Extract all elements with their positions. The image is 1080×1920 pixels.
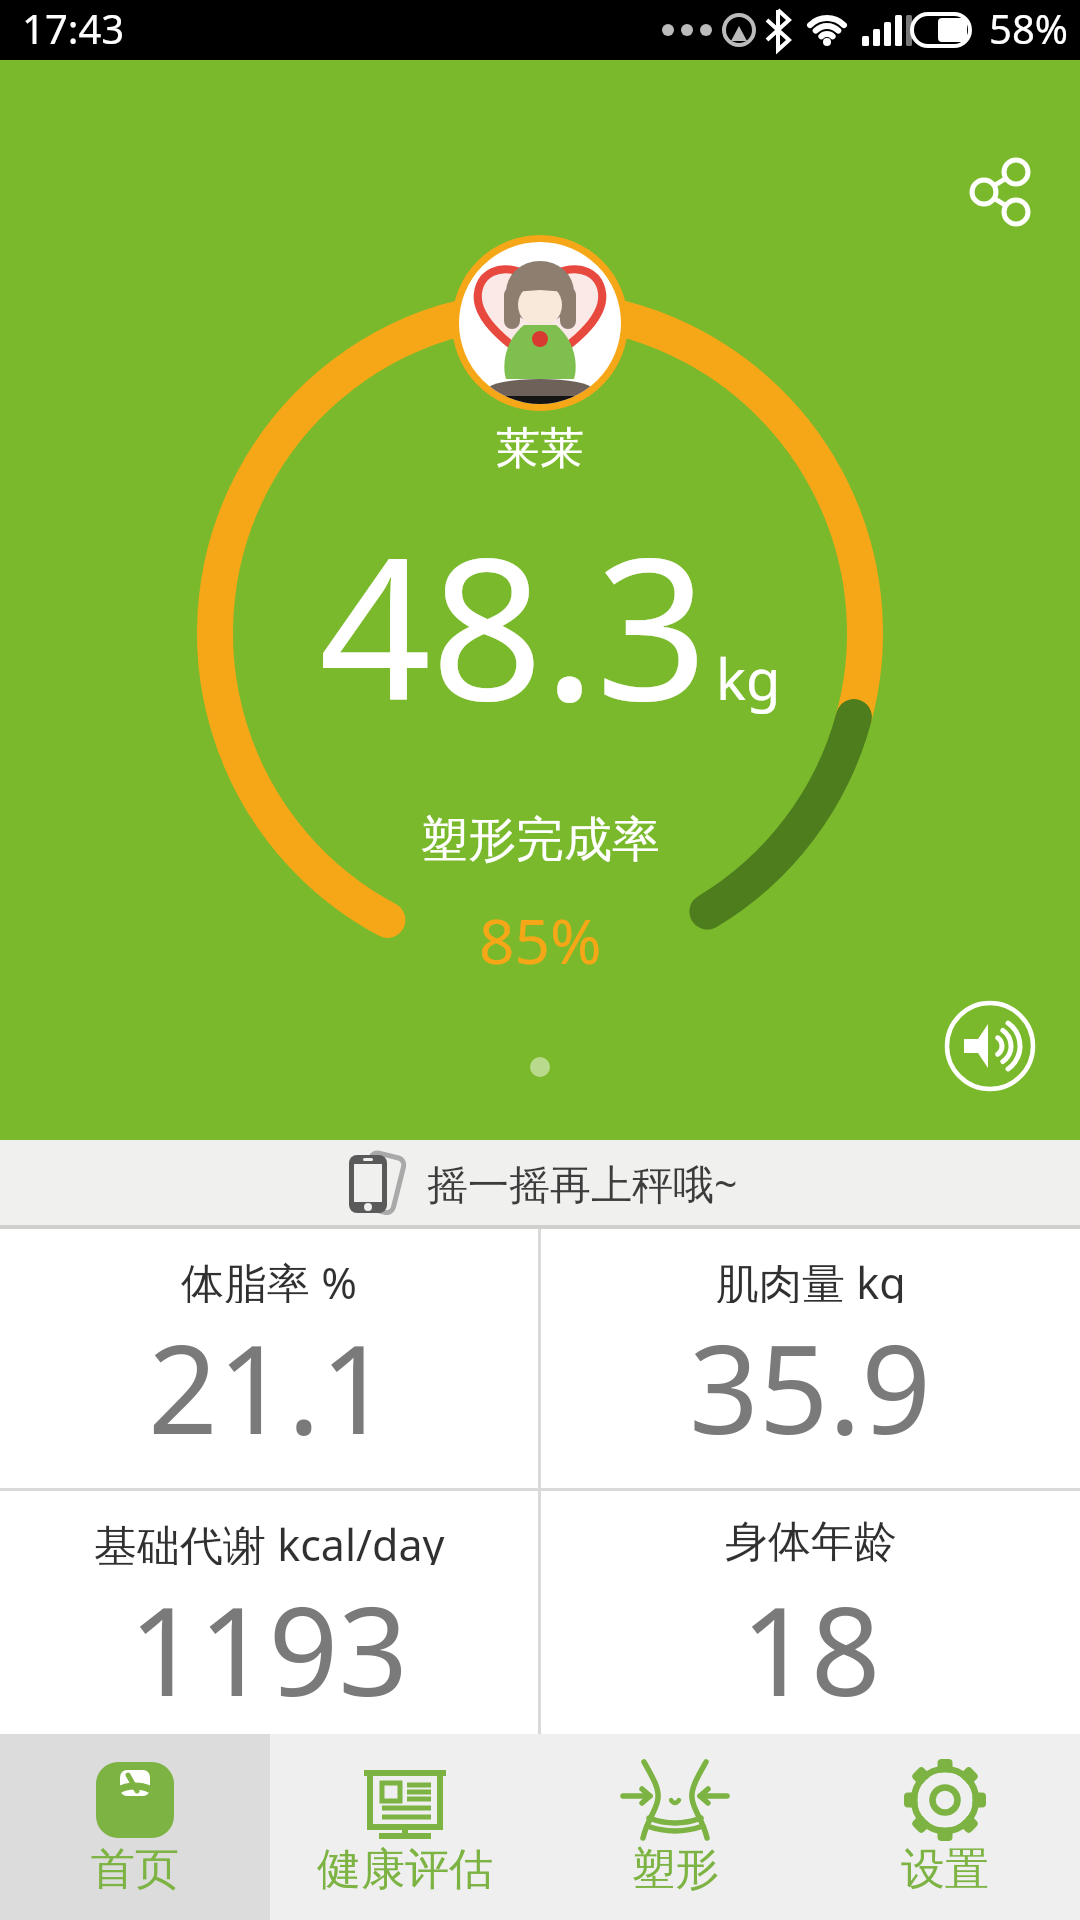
staticText: 首页 (91, 1842, 179, 1897)
staticText: 85% (479, 898, 602, 968)
staticText: 21.1 (148, 1304, 391, 1454)
button[interactable]: 塑形 (540, 1734, 810, 1920)
button[interactable] (950, 100, 1060, 210)
staticText: 基础代谢 kcal/day (94, 1515, 445, 1565)
staticText: 身体年龄 (725, 1515, 897, 1565)
staticText: 1193 (129, 1566, 409, 1716)
staticText: 58% (989, 1, 1068, 55)
button[interactable]: 设置 (810, 1734, 1080, 1920)
button[interactable]: 摇一摇再上秤哦~ (0, 1140, 1080, 1225)
staticText: 摇一摇再上秤哦~ (427, 1155, 738, 1211)
staticText: 健康评估 (317, 1842, 493, 1897)
staticText: 莱莱 (496, 421, 584, 476)
staticText: 肌肉量 kg (716, 1253, 906, 1303)
staticText: 体脂率 % (181, 1253, 357, 1303)
staticText: 塑形 (631, 1842, 719, 1897)
staticText: 17:43 (22, 1, 125, 55)
staticText: 35.9 (689, 1304, 932, 1454)
staticText: 48.3 (319, 490, 708, 757)
button[interactable]: 首页 (0, 1734, 270, 1920)
staticText: 18 (741, 1566, 881, 1716)
staticText: 塑形完成率 (420, 810, 660, 870)
button[interactable] (930, 990, 1050, 1110)
button[interactable]: 健康评估 (270, 1734, 540, 1920)
staticText: kg (716, 640, 781, 716)
staticText: 设置 (901, 1842, 989, 1897)
